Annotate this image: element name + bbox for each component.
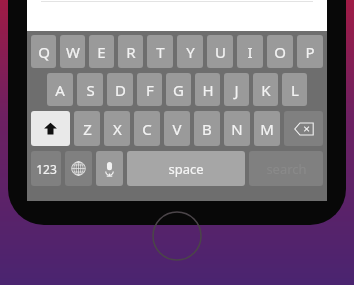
staticText: 123	[36, 161, 57, 177]
staticText: I	[247, 42, 253, 62]
button[interactable]: Shift	[31, 111, 70, 146]
button[interactable]: Z	[74, 111, 100, 146]
staticText: F	[146, 80, 154, 100]
staticText: V	[172, 119, 182, 139]
button[interactable]: C	[134, 111, 160, 146]
staticText: M	[260, 119, 274, 139]
button[interactable]: U	[207, 35, 233, 68]
staticText: E	[97, 42, 106, 62]
staticText: J	[234, 80, 239, 100]
button[interactable]: O	[267, 35, 293, 68]
staticText: O	[274, 42, 286, 62]
button[interactable]: 123	[31, 151, 61, 186]
button[interactable]: Y	[177, 35, 203, 68]
button[interactable]: B	[194, 111, 220, 146]
staticText: W	[66, 42, 80, 62]
staticText: Q	[38, 42, 50, 62]
button[interactable]: J	[224, 73, 249, 106]
button[interactable]: V	[164, 111, 190, 146]
button[interactable]: X	[104, 111, 130, 146]
button[interactable]: W	[60, 35, 85, 68]
staticText: T	[156, 42, 165, 62]
staticText: L	[291, 80, 299, 100]
staticText: Z	[83, 119, 92, 139]
staticText: H	[202, 80, 214, 100]
button[interactable]: S	[77, 73, 103, 106]
button[interactable]: space	[127, 151, 245, 186]
staticText: X	[113, 119, 122, 139]
button[interactable]: I	[237, 35, 263, 68]
button[interactable]: Change language	[65, 151, 92, 186]
staticText: G	[173, 80, 184, 100]
staticText: N	[231, 119, 243, 139]
button[interactable]: P	[297, 35, 323, 68]
staticText: C	[142, 119, 152, 139]
button[interactable]: R	[118, 35, 143, 68]
button[interactable]: K	[253, 73, 278, 106]
staticText: B	[202, 119, 212, 139]
button[interactable]: T	[147, 35, 173, 68]
staticText: space	[168, 160, 204, 178]
button[interactable]: M	[254, 111, 280, 146]
staticText: D	[115, 80, 126, 100]
button[interactable]: A	[47, 73, 73, 106]
button[interactable]: D	[107, 73, 133, 106]
staticText: K	[261, 80, 271, 100]
button[interactable]: H	[195, 73, 220, 106]
button[interactable]: Voice input	[96, 151, 123, 186]
staticText: S	[86, 80, 95, 100]
staticText: Y	[186, 42, 195, 62]
button[interactable]: Backspace	[284, 111, 323, 146]
staticText: P	[305, 42, 315, 62]
button[interactable]: F	[137, 73, 162, 106]
button[interactable]: Q	[31, 35, 56, 68]
button[interactable]: L	[282, 73, 307, 106]
staticText: R	[126, 42, 136, 62]
button[interactable]: E	[89, 35, 114, 68]
button[interactable]: G	[166, 73, 191, 106]
staticText: U	[215, 42, 226, 62]
button[interactable]: N	[224, 111, 250, 146]
staticText: A	[55, 80, 65, 100]
